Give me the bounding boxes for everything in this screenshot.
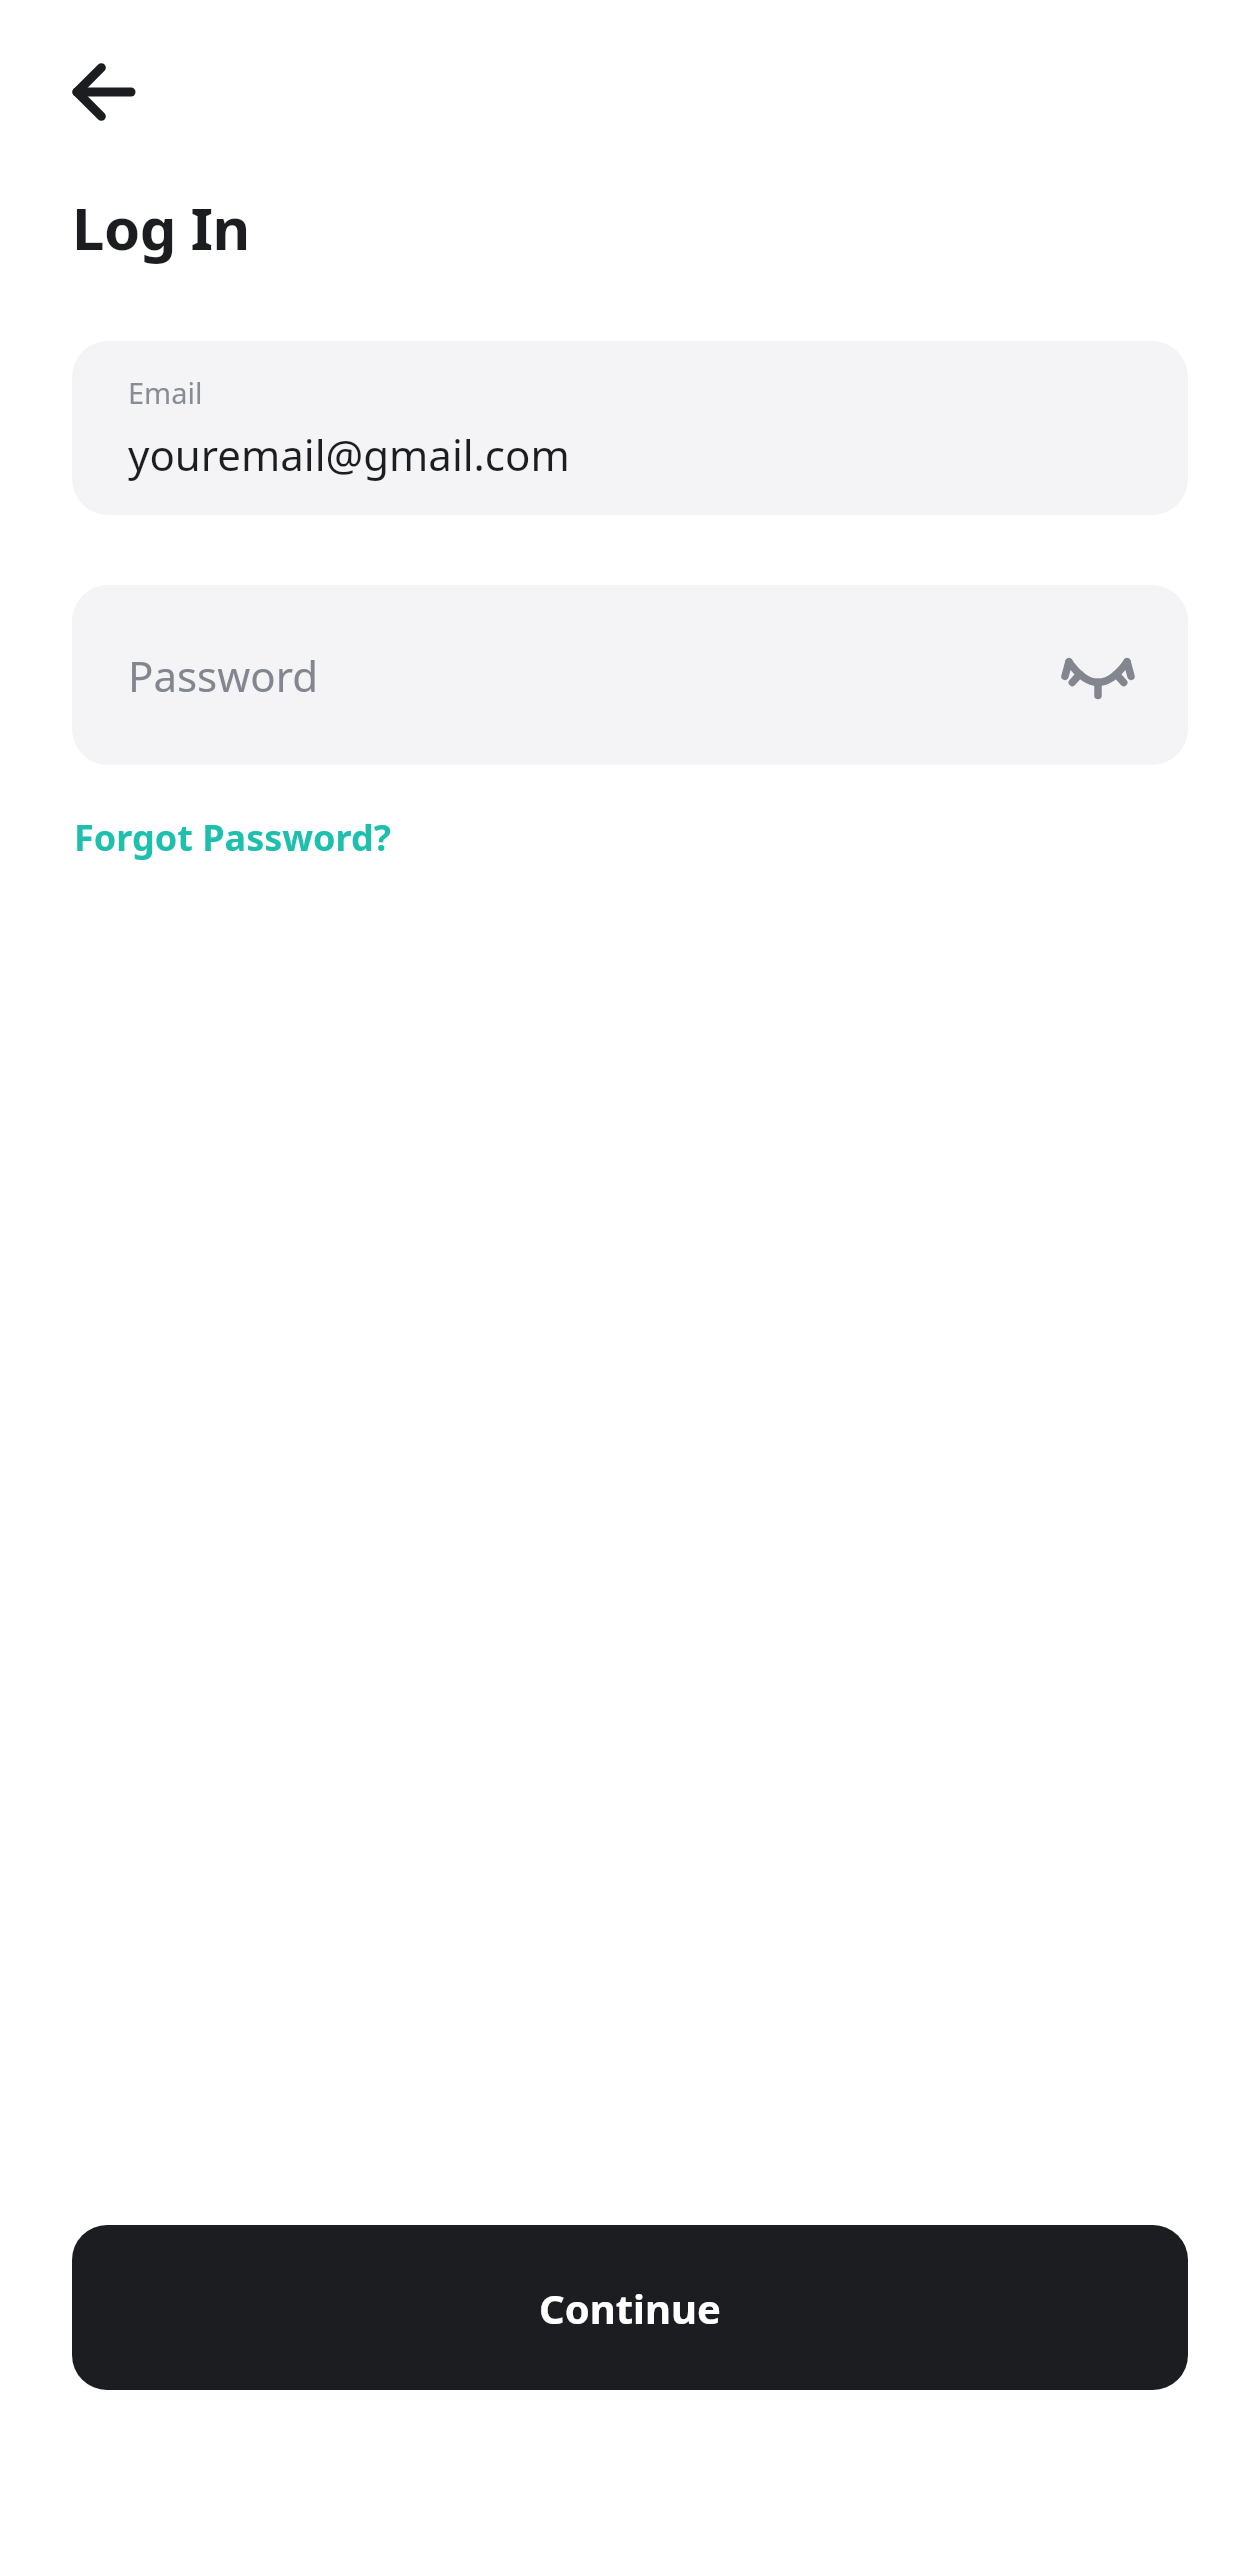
button[interactable]: Show password [1056,633,1140,717]
button[interactable]: Back [52,40,156,144]
staticText: Continue [539,2281,721,2335]
button[interactable]: Password [72,585,1188,765]
button[interactable]: Forgot Password? [72,807,393,868]
button[interactable]: Continue [72,2225,1188,2390]
button[interactable]: Email [72,341,1188,515]
staticText: Forgot Password? [74,813,391,862]
staticText: Password [128,647,1056,704]
staticText: youremail@gmail.com [128,426,570,483]
staticText: Log In [72,188,250,267]
staticText: Email [128,373,203,412]
